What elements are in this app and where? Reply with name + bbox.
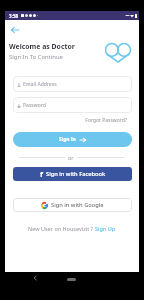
staticText: Welcome as Doctor <box>9 42 75 51</box>
button[interactable]: Sign in with Google <box>13 198 132 212</box>
staticText: New User on Housevizit ? <box>28 225 95 232</box>
staticText: Sign In <box>59 136 76 143</box>
staticText: or <box>68 154 74 161</box>
button[interactable]: Forgot Password? <box>13 117 127 124</box>
staticText: f <box>40 169 43 179</box>
button[interactable]: Email Address <box>13 76 132 92</box>
button[interactable]: Back <box>30 273 40 283</box>
button[interactable]: f <box>13 167 132 181</box>
button[interactable]: Sign In <box>13 132 132 147</box>
staticText: Password <box>23 102 46 109</box>
button[interactable]: Back <box>9 24 20 35</box>
staticText: Sign in with Facebook <box>46 170 106 178</box>
button[interactable]: Password <box>13 97 132 113</box>
staticText: Email Address <box>23 81 57 88</box>
staticText: Sign In To Continue <box>9 53 63 61</box>
staticText: 3:58 <box>9 13 19 19</box>
button[interactable]: Sign Up <box>95 225 116 232</box>
staticText: Sign in with Google <box>51 201 104 209</box>
